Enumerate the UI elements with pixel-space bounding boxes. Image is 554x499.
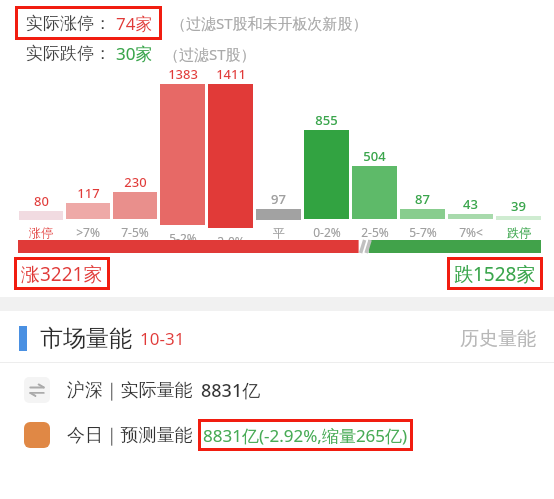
- staticText: 855: [315, 111, 338, 129]
- staticText: 8831亿(-2.92%,缩量265亿): [203, 424, 408, 447]
- button[interactable]: 1383: [160, 65, 205, 240]
- button[interactable]: 跌1528家: [447, 257, 543, 290]
- staticText: 39: [511, 197, 526, 215]
- button[interactable]: 今日｜预测量能: [0, 419, 554, 451]
- staticText: 7%<: [459, 224, 483, 240]
- staticText: 504: [363, 147, 386, 165]
- staticText: 117: [77, 184, 100, 202]
- staticText: 平: [273, 225, 285, 240]
- staticText: 跌1528家: [454, 261, 536, 287]
- staticText: 实际跌停：: [26, 43, 111, 64]
- staticText: 30家: [116, 42, 153, 65]
- staticText: （过滤ST股和未开板次新股）: [171, 13, 368, 33]
- button[interactable]: 97: [256, 190, 301, 240]
- button[interactable]: 80: [19, 192, 63, 240]
- staticText: 今日｜预测量能: [67, 424, 193, 447]
- staticText: 跌停: [507, 225, 531, 240]
- staticText: >7%: [76, 224, 100, 240]
- staticText: 230: [124, 173, 147, 191]
- staticText: 97: [271, 190, 286, 208]
- staticText: 10-31: [140, 327, 185, 350]
- button[interactable]: 855: [304, 111, 349, 240]
- button[interactable]: 39: [496, 197, 541, 240]
- other: 沪深实际量能: [24, 377, 50, 403]
- button[interactable]: 历史量能: [460, 327, 536, 351]
- staticText: 2-5%: [361, 224, 389, 240]
- button[interactable]: 沪深实际量能: [0, 377, 554, 403]
- staticText: 7-5%: [121, 224, 149, 240]
- button[interactable]: 8831亿(-2.92%,缩量265亿): [198, 419, 413, 451]
- button[interactable]: 1411: [208, 65, 253, 240]
- staticText: 0-2%: [313, 224, 341, 240]
- button[interactable]: 涨3221家: [14, 257, 110, 290]
- button[interactable]: 230: [113, 173, 157, 240]
- staticText: （过滤ST股）: [164, 44, 256, 64]
- staticText: 43: [463, 195, 478, 213]
- staticText: 涨3221家: [21, 261, 103, 287]
- staticText: 市场量能: [40, 324, 132, 353]
- button[interactable]: 市场量能: [0, 324, 554, 353]
- staticText: 5-2%: [169, 230, 197, 240]
- button[interactable]: 实际涨停：: [26, 6, 153, 40]
- staticText: 1411: [216, 65, 246, 83]
- button[interactable]: 43: [448, 195, 493, 240]
- button[interactable]: 504: [352, 147, 397, 240]
- staticText: 80: [34, 192, 49, 210]
- staticText: 5-7%: [409, 224, 437, 240]
- staticText: 74家: [116, 12, 153, 35]
- staticText: 87: [415, 190, 430, 208]
- button[interactable]: 87: [400, 190, 445, 240]
- staticText: 沪深｜实际量能: [67, 379, 193, 402]
- staticText: 1383: [168, 65, 198, 83]
- staticText: 8831亿: [201, 378, 261, 403]
- staticText: 涨停: [29, 225, 53, 240]
- button[interactable]: 117: [66, 184, 110, 240]
- staticText: 实际涨停：: [26, 13, 111, 34]
- staticText: 2-0%: [217, 233, 245, 240]
